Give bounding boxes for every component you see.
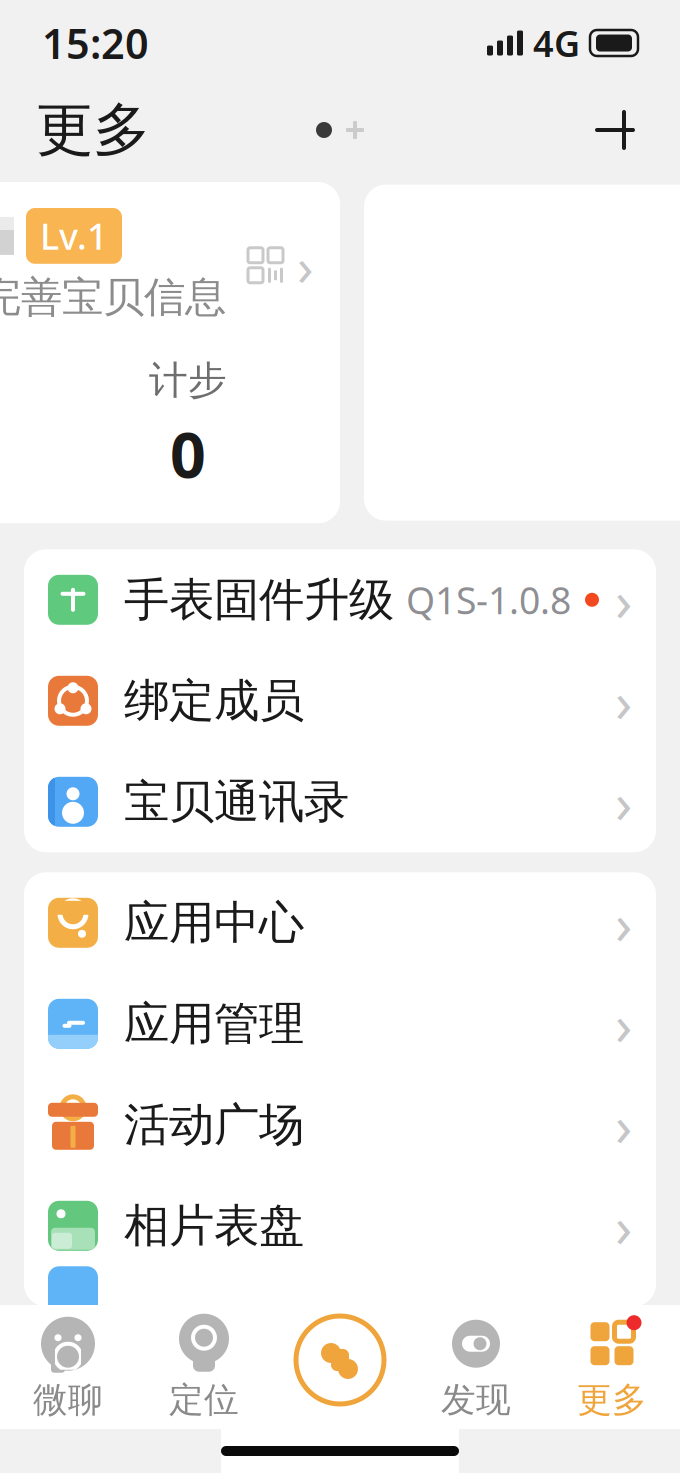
staticText: 尚未完善宝贝信息 [0,272,226,323]
staticText: 微聊 [33,1379,103,1421]
staticText: › [615,664,632,738]
button[interactable]: Lv.1 [0,182,340,523]
staticText: › [297,230,314,301]
staticText: 4G [533,19,580,67]
staticText: 更多 [577,1379,647,1421]
staticText: 计步 [149,357,227,404]
staticText: 应用中心 [124,895,304,951]
staticText: › [615,987,632,1061]
button[interactable]: 发现 [408,1301,544,1433]
staticText: › [615,765,632,839]
staticText: 绑定成员 [124,673,304,729]
staticText: › [615,1088,632,1162]
button[interactable]: 更多 [544,1301,680,1433]
staticText: › [615,886,632,960]
button[interactable]: 手表固件升级 [24,549,656,650]
staticText: 相片表盘 [124,1198,304,1254]
button[interactable]: 定位 [136,1301,272,1433]
staticText: 发现 [441,1379,511,1421]
button[interactable]: 应用中心 [24,872,656,973]
staticText: 应用管理 [124,996,304,1052]
button[interactable]: 绑定成员 [24,650,656,751]
staticText: › [615,1189,632,1263]
staticText: 0 [170,412,206,495]
button[interactable]: 宝贝通讯录 [24,751,656,852]
staticText: 更多 [36,95,150,165]
staticText: Lv.1 [40,212,108,260]
staticText: 定位 [169,1379,239,1421]
button[interactable]: Call [288,1308,392,1412]
staticText: › [615,563,632,637]
staticText: 15:20 [42,16,149,70]
button[interactable]: Add device [586,101,644,159]
staticText: 宝贝通讯录 [124,774,349,830]
button[interactable]: 应用管理 [24,973,656,1074]
staticText: 手表固件升级 [124,572,394,628]
button[interactable]: 微聊 [0,1301,136,1433]
button[interactable]: 相片表盘 [24,1175,656,1276]
staticText: 活动广场 [124,1097,304,1153]
staticText: Q1S-1.0.8 [406,575,571,625]
button[interactable]: 活动广场 [24,1074,656,1175]
